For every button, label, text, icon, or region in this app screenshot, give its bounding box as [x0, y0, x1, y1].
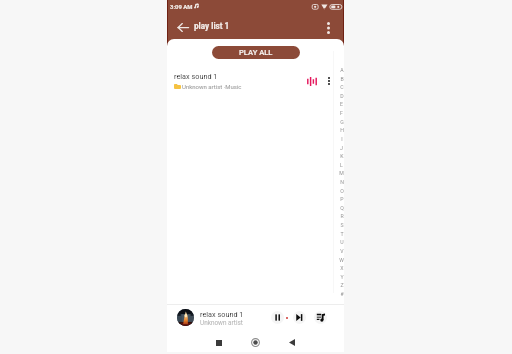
button[interactable]: Home: [247, 334, 263, 350]
staticText: P: [340, 196, 344, 202]
staticText: E: [340, 101, 343, 107]
button[interactable]: More options: [320, 19, 337, 36]
button[interactable]: relax sound 1: [167, 66, 344, 93]
staticText: Y: [340, 274, 344, 280]
staticText: relax sound 1: [174, 72, 218, 81]
staticText: relax sound 1: [200, 310, 244, 319]
button[interactable]: Back: [284, 334, 300, 350]
staticText: B: [340, 76, 344, 82]
staticText: X: [340, 265, 344, 271]
staticText: L: [340, 162, 343, 168]
button[interactable]: Pause: [271, 311, 284, 324]
button[interactable]: Playing queue: [314, 311, 327, 324]
staticText: N: [340, 179, 344, 185]
staticText: H: [340, 127, 344, 133]
button[interactable]: Next track: [293, 311, 306, 324]
staticText: G: [340, 119, 344, 125]
staticText: M: [339, 170, 344, 176]
staticText: O: [340, 188, 344, 194]
staticText: Z: [340, 282, 344, 288]
staticText: Unknown artist ·Music: [182, 83, 242, 90]
button[interactable]: Song options: [322, 74, 336, 88]
staticText: W: [339, 257, 344, 263]
staticText: I: [341, 136, 343, 142]
staticText: R: [340, 213, 344, 219]
staticText: J: [340, 145, 343, 151]
button[interactable]: Recents: [211, 335, 227, 351]
staticText: PLAY ALL: [239, 48, 273, 57]
staticText: #: [340, 291, 344, 297]
button[interactable]: PLAY ALL: [212, 46, 300, 59]
staticText: K: [340, 153, 344, 159]
button[interactable]: Back: [174, 19, 191, 36]
staticText: Unknown artist: [200, 319, 243, 327]
staticText: Q: [340, 205, 344, 211]
staticText: V: [340, 248, 344, 254]
staticText: T: [340, 231, 344, 237]
staticText: play list 1: [194, 21, 230, 31]
staticText: F: [340, 110, 343, 116]
staticText: D: [340, 93, 344, 99]
staticText: U: [340, 239, 344, 245]
staticText: S: [340, 222, 344, 228]
staticText: 3:09 AM: [170, 4, 193, 11]
staticText: A: [340, 67, 344, 73]
staticText: C: [340, 84, 344, 90]
